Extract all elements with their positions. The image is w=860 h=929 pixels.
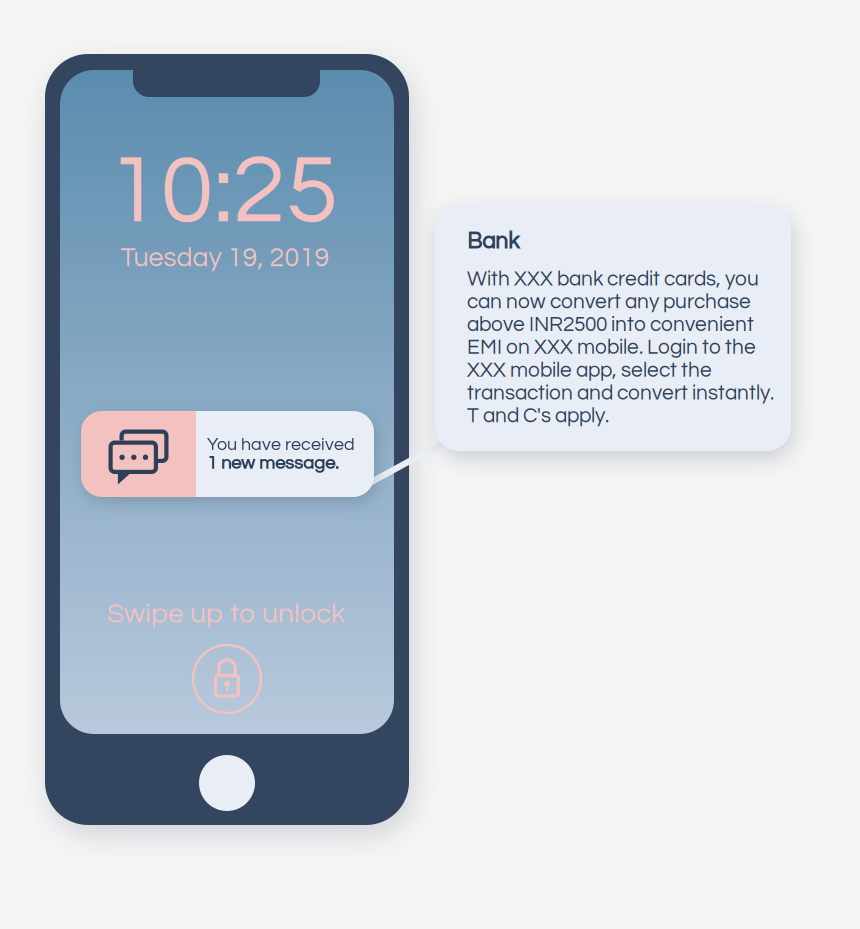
staticText: Tuesday 19, 2019 — [120, 244, 329, 272]
button[interactable]: You have received — [81, 411, 374, 497]
staticText: 10:25 — [107, 143, 338, 241]
staticText: You have received — [207, 435, 355, 454]
staticText: Swipe up to unlock — [107, 600, 345, 628]
staticText: With XXX bank credit cards, you can now … — [467, 268, 774, 427]
staticText: Bank — [467, 230, 519, 253]
staticText: 1 new message. — [207, 454, 339, 473]
